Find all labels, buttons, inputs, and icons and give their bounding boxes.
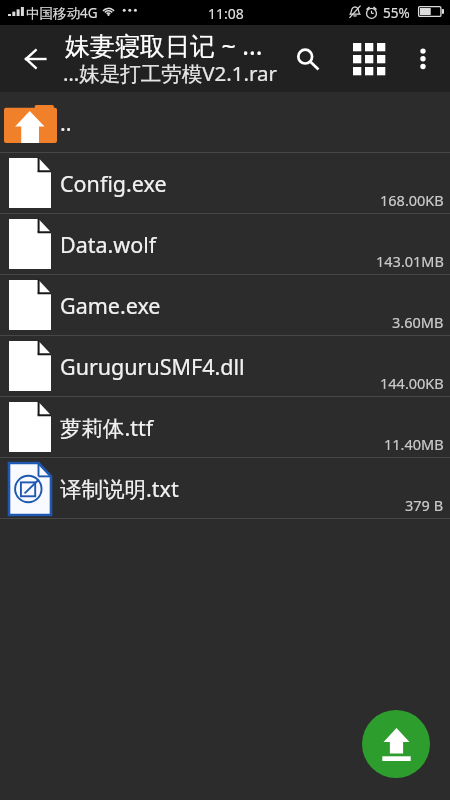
- staticText: 译制说明.txt: [60, 474, 179, 503]
- staticText: 144.00KB: [380, 373, 444, 393]
- staticText: 萝莉体.ttf: [60, 413, 154, 442]
- button[interactable]: Data.wolf: [0, 214, 450, 275]
- staticText: Data.wolf: [60, 230, 157, 259]
- button[interactable]: GuruguruSMF4.dll: [0, 336, 450, 397]
- staticText: Config.exe: [60, 169, 167, 198]
- staticText: 3.60MB: [392, 312, 444, 332]
- staticText: ..: [60, 108, 72, 137]
- button[interactable]: Config.exe: [0, 153, 450, 214]
- button[interactable]: Game.exe: [0, 275, 450, 336]
- button[interactable]: ..: [0, 92, 450, 153]
- button[interactable]: Grid view: [341, 25, 396, 92]
- button[interactable]: Back: [7, 25, 63, 92]
- staticText: 168.00KB: [380, 190, 444, 210]
- staticText: 11:08: [208, 4, 244, 23]
- staticText: Game.exe: [60, 291, 161, 320]
- button[interactable]: More options: [400, 25, 445, 92]
- staticText: 11.40MB: [384, 434, 444, 454]
- staticText: 143.01MB: [376, 251, 444, 271]
- staticText: 379 B: [405, 495, 444, 515]
- button[interactable]: 萝莉体.ttf: [0, 397, 450, 458]
- button[interactable]: 译制说明.txt: [0, 458, 450, 519]
- staticText: 中国移动4G: [26, 4, 98, 22]
- staticText: 55%: [383, 4, 410, 22]
- staticText: 妹妻寝取日记 ~ ...: [65, 28, 263, 62]
- staticText: GuruguruSMF4.dll: [60, 352, 245, 381]
- button[interactable]: Extract: [362, 710, 430, 778]
- staticText: …妹是打工劳模V2.1.rar: [63, 59, 277, 87]
- button[interactable]: Search: [288, 25, 332, 92]
